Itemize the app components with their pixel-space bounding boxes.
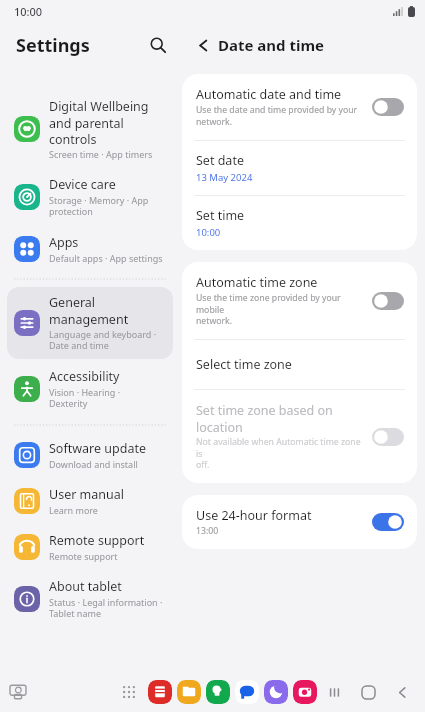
button[interactable]: Automatic time zone: [182, 262, 417, 339]
button[interactable]: Automatic date and time: [371, 97, 405, 117]
staticText: Remote support: [49, 550, 118, 562]
staticText: Learn more: [49, 504, 98, 516]
button[interactable]: Use 24-hour format: [182, 495, 417, 549]
button[interactable]: Use 24-hour format: [371, 512, 405, 532]
button[interactable]: Home: [351, 675, 385, 709]
button[interactable]: Accessibility: [7, 361, 173, 417]
button[interactable]: Software update: [7, 433, 173, 477]
button[interactable]: Set time: [182, 196, 417, 250]
button[interactable]: Messages: [235, 680, 259, 704]
staticText: Digital Wellbeing and parental controls: [49, 98, 149, 147]
staticText: Not available when Automatic time zone i…: [196, 436, 363, 471]
staticText: Apps: [49, 234, 79, 251]
button[interactable]: Select time zone: [182, 340, 417, 389]
staticText: Vision · Hearing · Dexterity: [49, 386, 121, 410]
staticText: Set time zone based on location: [196, 402, 333, 435]
staticText: 13:00: [196, 525, 219, 537]
staticText: User manual: [49, 486, 124, 503]
button[interactable]: Samsung Notes: [148, 680, 172, 704]
button[interactable]: Automatic time zone: [371, 291, 405, 311]
button[interactable]: About tablet: [7, 571, 173, 627]
button[interactable]: User manual: [7, 479, 173, 523]
staticText: Date and time: [218, 35, 325, 55]
button[interactable]: Recents panel: [4, 678, 32, 706]
button[interactable]: Samsung Internet: [264, 680, 288, 704]
button[interactable]: General management: [7, 287, 173, 359]
staticText: Automatic date and time: [196, 86, 342, 103]
button[interactable]: Back: [385, 675, 419, 709]
staticText: Language and keyboard · Date and time: [49, 328, 157, 352]
button[interactable]: Set date: [182, 141, 417, 195]
staticText: 10:00: [14, 4, 43, 19]
staticText: About tablet: [49, 578, 122, 595]
staticText: Set date: [196, 152, 244, 169]
staticText: Screen time · App timers: [49, 148, 153, 160]
button[interactable]: Remote support: [7, 525, 173, 569]
button[interactable]: My Files: [177, 680, 201, 704]
button[interactable]: Automatic date and time: [182, 74, 417, 140]
staticText: Remote support: [49, 532, 145, 549]
staticText: 13 May 2024: [196, 171, 253, 184]
button[interactable]: Recents: [317, 675, 351, 709]
staticText: General management: [49, 294, 129, 327]
staticText: Download and install: [49, 458, 138, 470]
staticText: Settings: [16, 33, 90, 58]
button[interactable]: Camera: [293, 680, 317, 704]
staticText: Default apps · App settings: [49, 252, 163, 264]
staticText: Automatic time zone: [196, 274, 318, 291]
staticText: Accessibility: [49, 368, 120, 385]
button[interactable]: Search: [142, 29, 174, 61]
staticText: Set time: [196, 207, 245, 224]
button[interactable]: Phone: [206, 680, 230, 704]
button[interactable]: Set time zone based on location: [182, 390, 417, 483]
staticText: Use the date and time provided by your n…: [196, 104, 358, 128]
staticText: Select time zone: [196, 356, 292, 373]
staticText: Software update: [49, 440, 146, 457]
staticText: Use 24-hour format: [196, 507, 312, 524]
staticText: Use the time zone provided by your mobil…: [196, 292, 363, 327]
button[interactable]: Apps: [116, 679, 142, 705]
button[interactable]: Set time zone based on location: [371, 427, 405, 447]
staticText: Status · Legal information · Tablet name: [49, 596, 163, 620]
staticText: Device care: [49, 176, 116, 193]
staticText: Storage · Memory · App protection: [49, 194, 149, 218]
button[interactable]: Apps: [7, 227, 173, 271]
button[interactable]: Digital Wellbeing and parental controls: [7, 91, 173, 167]
button[interactable]: Back: [188, 30, 218, 60]
button[interactable]: Device care: [7, 169, 173, 225]
staticText: 10:00: [196, 226, 221, 239]
